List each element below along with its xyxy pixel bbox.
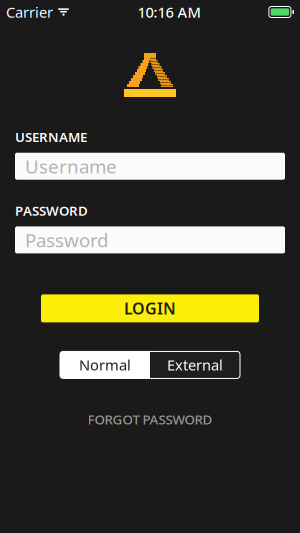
staticText: Password <box>25 227 108 252</box>
staticText: External <box>167 355 223 375</box>
staticText: Carrier <box>6 2 53 22</box>
staticText: Normal <box>79 355 131 375</box>
button[interactable]: Normal <box>60 351 150 378</box>
staticText: PASSWORD <box>15 202 88 219</box>
button[interactable]: LOGIN <box>41 294 259 322</box>
staticText: Username <box>25 154 117 179</box>
staticText: LOGIN <box>124 298 176 319</box>
staticText: USERNAME <box>15 128 87 146</box>
button[interactable]: Password <box>15 226 285 253</box>
button[interactable]: FORGOT PASSWORD <box>87 410 212 428</box>
button[interactable]: External <box>150 351 240 378</box>
button[interactable]: Username <box>15 153 285 180</box>
staticText: 10:16 AM <box>137 2 200 22</box>
staticText: FORGOT PASSWORD <box>87 410 212 428</box>
